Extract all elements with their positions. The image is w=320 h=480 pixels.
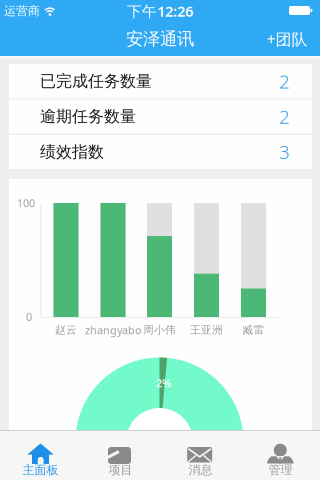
staticText: 100: [17, 196, 35, 210]
staticText: 消息: [188, 463, 212, 477]
staticText: 0: [26, 310, 32, 324]
staticText: 项目: [108, 463, 132, 477]
staticText: +团队: [266, 28, 307, 50]
button[interactable]: +团队: [257, 21, 317, 57]
staticText: 王亚洲: [190, 323, 223, 336]
staticText: 2: [279, 104, 290, 129]
staticText: 臧雷: [242, 323, 264, 336]
staticText: zhangyabo: [85, 323, 141, 337]
staticText: 2: [279, 69, 290, 94]
button[interactable]: 消息: [160, 430, 240, 480]
staticText: 周小伟: [143, 323, 176, 336]
staticText: 下午12:26: [127, 1, 193, 21]
staticText: 已完成任务数量: [40, 71, 152, 91]
staticText: 管理: [268, 463, 292, 477]
button[interactable]: 项目: [80, 430, 160, 480]
staticText: 2%: [156, 376, 171, 390]
button[interactable]: 绩效指数: [9, 135, 312, 169]
staticText: 赵云: [55, 323, 77, 336]
staticText: 主面板: [22, 463, 58, 477]
button[interactable]: 管理: [240, 430, 320, 480]
button[interactable]: 逾期任务数量: [9, 99, 312, 134]
staticText: 运营商: [4, 4, 40, 18]
staticText: 逾期任务数量: [40, 107, 136, 126]
staticText: 安泽通讯: [126, 28, 194, 50]
staticText: 3: [279, 139, 290, 164]
button[interactable]: 已完成任务数量: [9, 64, 312, 98]
button[interactable]: 主面板: [0, 430, 80, 480]
staticText: 绩效指数: [40, 142, 104, 162]
